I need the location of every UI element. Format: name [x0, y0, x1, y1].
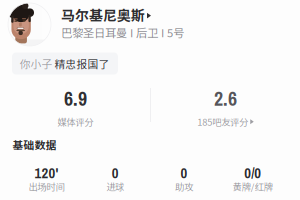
staticText: 2.6	[214, 85, 237, 112]
button[interactable]: 马尔基尼奥斯	[61, 4, 151, 25]
staticText: 助攻	[175, 180, 193, 193]
staticText: 0	[112, 163, 119, 183]
staticText: 0	[180, 163, 187, 183]
staticText: 0/0	[244, 163, 261, 183]
staticText: 6.9	[64, 85, 87, 112]
staticText: 你小子	[19, 56, 54, 71]
staticText: 精忠报国了	[54, 56, 109, 71]
staticText: 基础数据	[12, 137, 56, 152]
staticText: 进球	[106, 180, 124, 193]
staticText: 媒体评分	[57, 115, 93, 128]
staticText: 出场时间	[28, 180, 64, 193]
staticText: 黄牌/红牌	[233, 180, 273, 193]
staticText: 马尔基尼奥斯	[61, 4, 145, 25]
button[interactable]: 2.6	[150, 85, 300, 128]
staticText: 185吧友评分	[197, 115, 248, 128]
staticText: 120'	[34, 163, 58, 183]
staticText: 巴黎圣日耳曼 I 后卫 I 5号	[61, 24, 184, 40]
